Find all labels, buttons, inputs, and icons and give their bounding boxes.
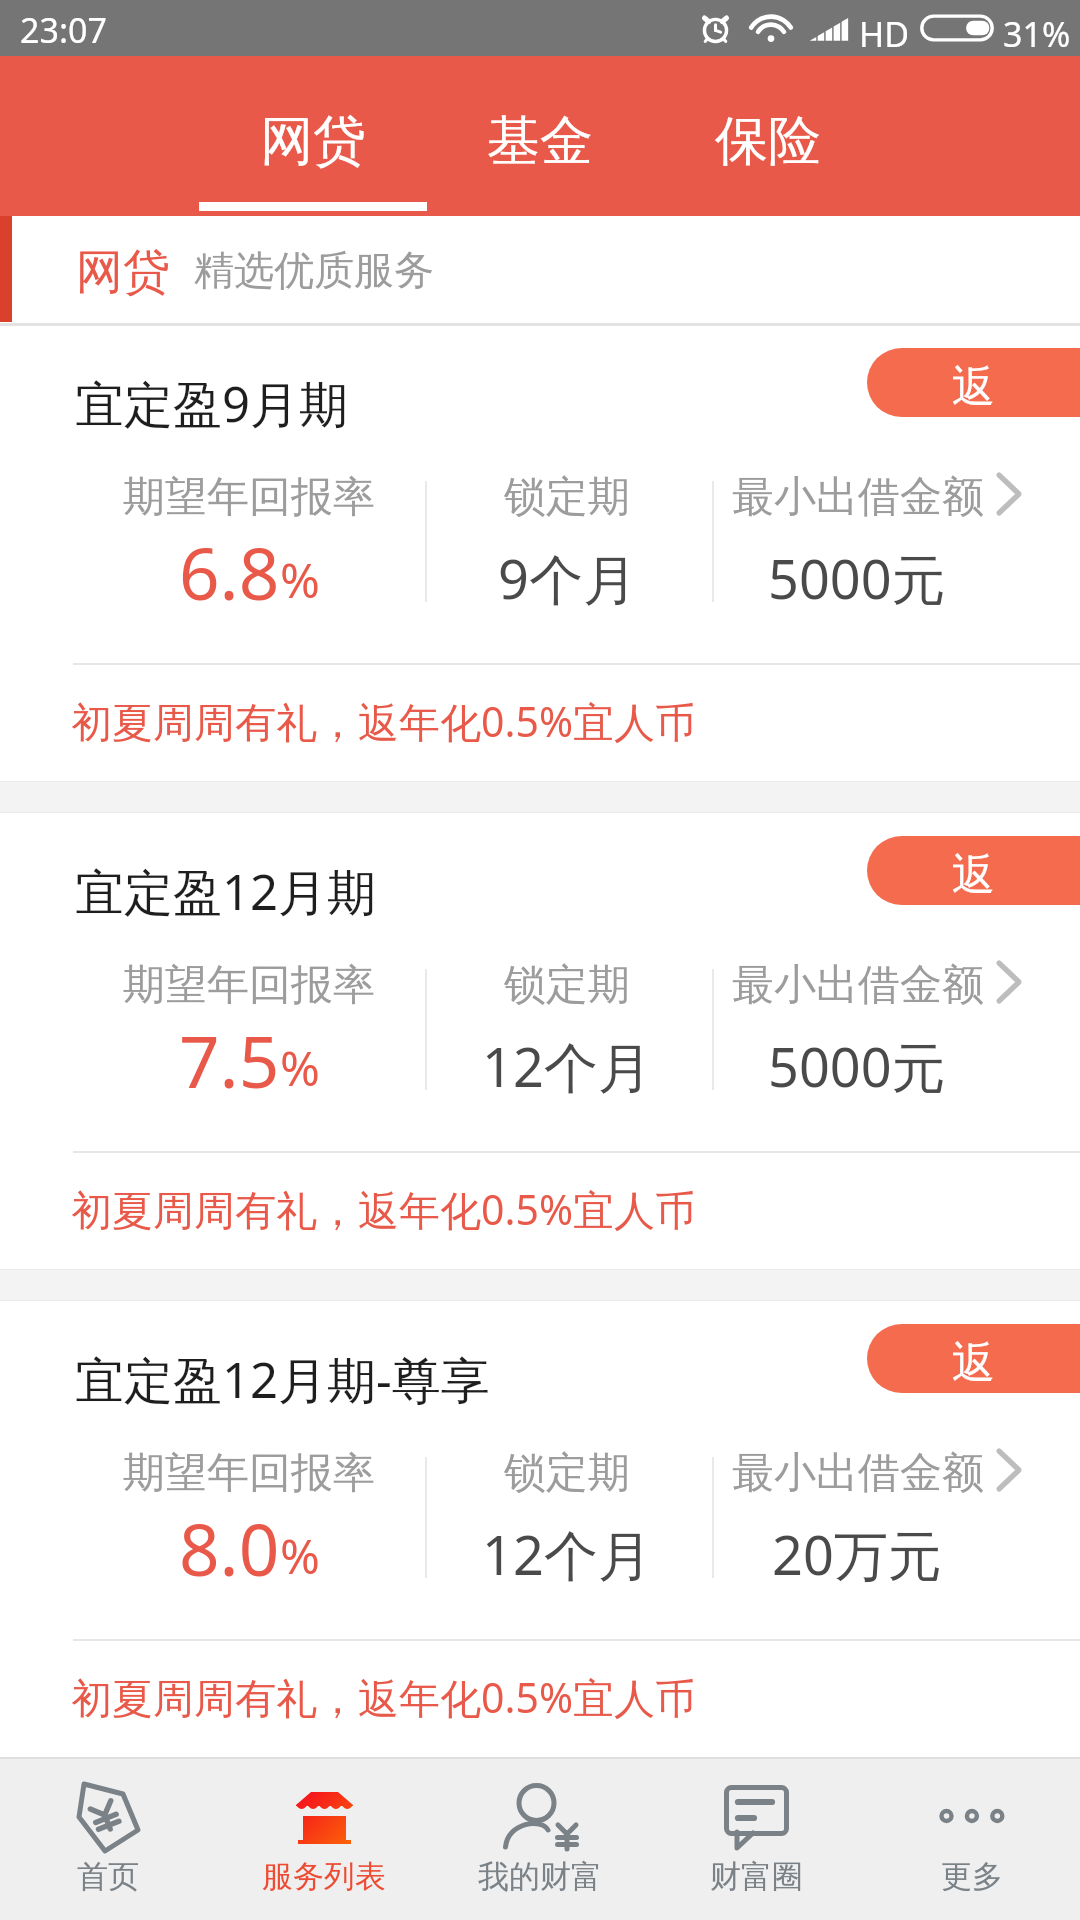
staticText: 首页 bbox=[77, 1857, 139, 1896]
other: 详情 bbox=[996, 471, 1022, 517]
staticText: HD bbox=[859, 11, 910, 57]
button[interactable]: 返 bbox=[867, 836, 1080, 905]
staticText: 锁定期 bbox=[504, 959, 630, 1012]
staticText: % bbox=[280, 1523, 320, 1588]
staticText: 宜定盈9月期 bbox=[75, 370, 349, 437]
staticText: 锁定期 bbox=[504, 1447, 630, 1500]
staticText: 精选优质服务 bbox=[194, 245, 434, 295]
button[interactable]: 我的财富 bbox=[432, 1757, 648, 1920]
other: 详情 bbox=[996, 1447, 1022, 1493]
staticText: % bbox=[280, 547, 320, 612]
staticText: 20万元 bbox=[772, 1517, 942, 1591]
staticText: 返 bbox=[952, 360, 995, 414]
staticText: 返 bbox=[952, 1336, 995, 1390]
staticText: 期望年回报率 bbox=[123, 471, 375, 524]
button[interactable]: 基金 bbox=[426, 56, 654, 216]
button[interactable]: 网贷 bbox=[199, 56, 427, 216]
button[interactable]: 财富圈 bbox=[648, 1757, 864, 1920]
staticText: 更多 bbox=[941, 1857, 1003, 1896]
staticText: 5000元 bbox=[768, 1029, 946, 1103]
button[interactable]: 宜定盈12月期-尊享 bbox=[0, 1301, 1080, 1757]
staticText: 23:07 bbox=[20, 7, 107, 53]
staticText: 返 bbox=[952, 848, 995, 902]
button[interactable]: 宜定盈9月期 bbox=[0, 322, 1080, 781]
button[interactable]: 服务列表 bbox=[216, 1757, 432, 1920]
staticText: 期望年回报率 bbox=[123, 959, 375, 1012]
staticText: 9个月 bbox=[498, 541, 637, 615]
staticText: 31% bbox=[1003, 11, 1071, 57]
staticText: 8.0 bbox=[179, 1500, 280, 1597]
button[interactable]: 返 bbox=[867, 348, 1080, 417]
staticText: % bbox=[280, 1035, 320, 1100]
staticText: 期望年回报率 bbox=[123, 1447, 375, 1500]
staticText: 12个月 bbox=[482, 1029, 652, 1103]
button[interactable]: 更多 bbox=[864, 1757, 1080, 1920]
staticText: 初夏周周有礼，返年化0.5%宜人币 bbox=[71, 693, 696, 749]
button[interactable]: 宜定盈12月期 bbox=[0, 813, 1080, 1269]
staticText: 保险 bbox=[715, 108, 821, 175]
staticText: 初夏周周有礼，返年化0.5%宜人币 bbox=[71, 1669, 696, 1725]
staticText: 最小出借金额 bbox=[732, 471, 984, 524]
staticText: 锁定期 bbox=[504, 471, 630, 524]
staticText: 6.8 bbox=[179, 524, 280, 621]
staticText: 最小出借金额 bbox=[732, 1447, 984, 1500]
staticText: 宜定盈12月期-尊享 bbox=[75, 1346, 490, 1413]
staticText: 宜定盈12月期 bbox=[75, 858, 377, 925]
staticText: 初夏周周有礼，返年化0.5%宜人币 bbox=[71, 1181, 696, 1237]
button[interactable]: 首页 bbox=[0, 1757, 216, 1920]
button[interactable]: 保险 bbox=[654, 56, 882, 216]
staticText: 基金 bbox=[487, 108, 593, 175]
staticText: 我的财富 bbox=[478, 1857, 602, 1896]
staticText: 网贷 bbox=[260, 108, 366, 175]
staticText: 12个月 bbox=[482, 1517, 652, 1591]
staticText: 服务列表 bbox=[262, 1857, 386, 1896]
staticText: 最小出借金额 bbox=[732, 959, 984, 1012]
button[interactable]: 返 bbox=[867, 1324, 1080, 1393]
staticText: 7.5 bbox=[179, 1012, 280, 1109]
staticText: 财富圈 bbox=[710, 1857, 803, 1896]
staticText: 5000元 bbox=[768, 541, 946, 615]
other: 详情 bbox=[996, 959, 1022, 1005]
staticText: 网贷 bbox=[76, 243, 170, 302]
